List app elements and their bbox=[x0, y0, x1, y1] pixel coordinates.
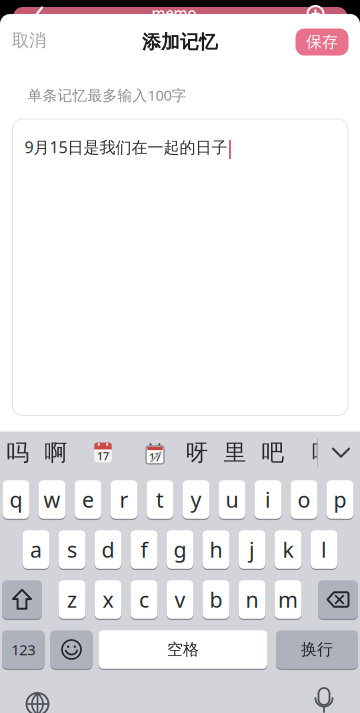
button[interactable]: u bbox=[218, 480, 245, 519]
button[interactable]: 日历 emoji 2 bbox=[146, 444, 164, 464]
button[interactable]: g bbox=[166, 530, 193, 569]
button[interactable]: 呀 bbox=[185, 439, 208, 467]
button[interactable]: i bbox=[254, 480, 281, 519]
button[interactable]: r bbox=[110, 480, 137, 519]
button[interactable]: k bbox=[274, 530, 301, 569]
button[interactable]: y bbox=[182, 480, 209, 519]
staticText: 换行 bbox=[301, 640, 333, 659]
button[interactable]: d bbox=[94, 530, 121, 569]
button[interactable]: b bbox=[202, 580, 229, 619]
staticText: r bbox=[119, 485, 128, 514]
staticText: 空格 bbox=[167, 640, 199, 659]
staticText: b bbox=[209, 585, 222, 614]
button[interactable]: p bbox=[326, 480, 353, 519]
staticText: q bbox=[9, 485, 22, 514]
staticText: 吗 bbox=[6, 439, 29, 467]
button[interactable]: f bbox=[130, 530, 157, 569]
button[interactable]: 吧 bbox=[261, 439, 284, 467]
button[interactable]: h bbox=[202, 530, 229, 569]
button[interactable]: Profile bbox=[305, 4, 325, 24]
staticText: g bbox=[173, 535, 186, 564]
staticText: 17 bbox=[97, 449, 109, 463]
button[interactable]: s bbox=[58, 530, 85, 569]
button[interactable]: e bbox=[74, 480, 101, 519]
staticText: 呀 bbox=[185, 439, 208, 467]
button[interactable]: 吗 bbox=[6, 439, 29, 467]
button[interactable]: t bbox=[146, 480, 173, 519]
button[interactable]: l bbox=[310, 530, 337, 569]
button[interactable]: 啊 bbox=[44, 439, 67, 467]
staticText: e bbox=[82, 485, 94, 514]
staticText: c bbox=[139, 585, 149, 614]
staticText: memo bbox=[151, 3, 196, 22]
button[interactable]: 保存 bbox=[295, 28, 348, 55]
staticText: z bbox=[67, 585, 77, 614]
staticText: l bbox=[321, 535, 327, 564]
staticText: k bbox=[282, 535, 293, 564]
button[interactable]: 切换键盘 bbox=[22, 689, 52, 713]
button[interactable]: 空格 bbox=[98, 630, 267, 669]
staticText: x bbox=[102, 585, 113, 614]
staticText: 123 bbox=[11, 640, 35, 659]
button[interactable]: Back bbox=[32, 6, 46, 16]
staticText: 啊 bbox=[44, 439, 67, 467]
button[interactable]: 取消 bbox=[12, 30, 46, 51]
button[interactable]: o bbox=[290, 480, 317, 519]
button[interactable]: c bbox=[130, 580, 157, 619]
staticText: 9月15日是我们在一起的日子 bbox=[24, 136, 227, 158]
button[interactable]: 听写 bbox=[311, 686, 337, 713]
button[interactable]: z bbox=[58, 580, 85, 619]
button[interactable]: j bbox=[238, 530, 265, 569]
staticText: a bbox=[30, 535, 42, 564]
staticText: f bbox=[140, 535, 147, 564]
button[interactable]: a bbox=[22, 530, 49, 569]
staticText: 哦 bbox=[312, 439, 335, 467]
staticText: o bbox=[297, 485, 310, 514]
staticText: v bbox=[174, 585, 185, 614]
button[interactable]: v bbox=[166, 580, 193, 619]
staticText: j bbox=[249, 535, 255, 564]
button[interactable]: 里 bbox=[223, 439, 246, 467]
staticText: 17 bbox=[149, 450, 161, 464]
staticText: 添加记忆 bbox=[142, 30, 218, 53]
button[interactable]: x bbox=[94, 580, 121, 619]
button[interactable]: q bbox=[2, 480, 29, 519]
staticText: n bbox=[245, 585, 258, 614]
staticText: i bbox=[265, 485, 271, 514]
staticText: w bbox=[43, 485, 60, 514]
staticText: 取消 bbox=[12, 30, 46, 51]
button[interactable]: m bbox=[274, 580, 301, 619]
button[interactable]: Delete bbox=[318, 580, 358, 619]
button[interactable]: 表情 bbox=[50, 630, 92, 669]
button[interactable]: 展开候选字 bbox=[331, 447, 351, 459]
staticText: 保存 bbox=[306, 32, 338, 52]
button[interactable]: n bbox=[238, 580, 265, 619]
staticText: h bbox=[209, 535, 222, 564]
staticText: t bbox=[156, 485, 164, 514]
staticText: m bbox=[278, 585, 298, 614]
staticText: s bbox=[67, 535, 77, 564]
staticText: u bbox=[225, 485, 238, 514]
button[interactable]: 日历 emoji bbox=[94, 442, 112, 462]
staticText: 吧 bbox=[261, 439, 284, 467]
button[interactable]: Shift bbox=[2, 580, 42, 619]
staticText: y bbox=[190, 485, 201, 514]
staticText: d bbox=[101, 535, 114, 564]
button[interactable]: 数字键盘 bbox=[2, 630, 44, 669]
button[interactable]: 换行 bbox=[276, 630, 358, 669]
button[interactable]: w bbox=[38, 480, 65, 519]
staticText: p bbox=[333, 485, 346, 514]
staticText: 单条记忆最多输入100字 bbox=[27, 85, 186, 105]
staticText: 里 bbox=[223, 439, 246, 467]
